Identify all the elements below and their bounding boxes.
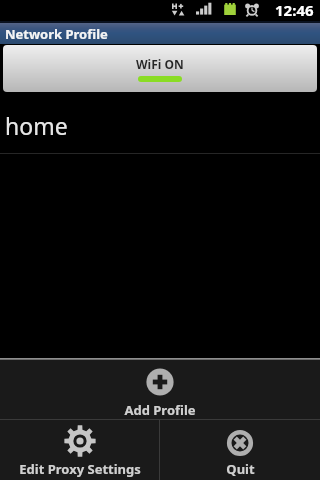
button[interactable]: Edit Proxy Settings xyxy=(0,420,159,480)
staticText: Quit xyxy=(226,460,255,478)
staticText: home xyxy=(5,110,68,141)
button[interactable]: home xyxy=(0,92,320,153)
button[interactable]: Quit xyxy=(160,420,320,480)
staticText: Edit Proxy Settings xyxy=(19,460,141,478)
other: Status icons: mobile data, signal, batte… xyxy=(0,0,320,21)
button[interactable]: WiFi ON xyxy=(3,45,317,92)
staticText: Network Profile xyxy=(5,25,108,43)
staticText: Add Profile xyxy=(124,401,196,419)
staticText: WiFi ON xyxy=(136,56,184,72)
staticText: 12:46 xyxy=(275,0,314,20)
button[interactable]: Add Profile xyxy=(0,360,320,419)
